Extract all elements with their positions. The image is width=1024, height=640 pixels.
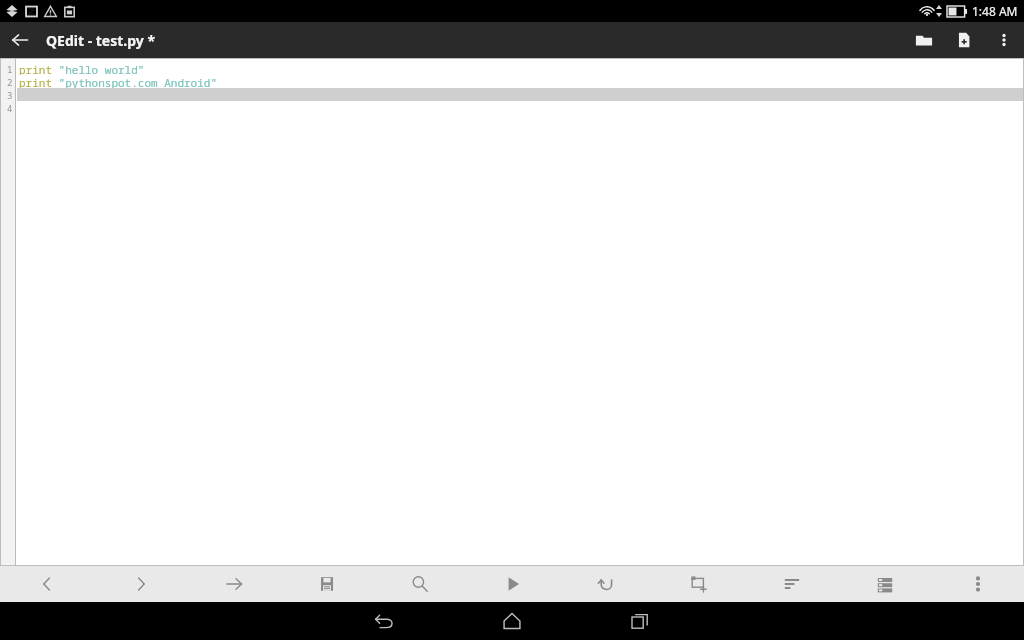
button[interactable]: More options xyxy=(931,566,1024,602)
button[interactable]: Open folder xyxy=(904,22,944,58)
staticText: 3 xyxy=(7,89,13,101)
staticText: 4 xyxy=(7,102,13,114)
button[interactable]: Tab xyxy=(187,566,280,602)
staticText: QEdit - test.py * xyxy=(46,31,156,50)
staticText: print "pythonspot.com Android" xyxy=(19,75,217,88)
button[interactable]: More options xyxy=(984,22,1024,58)
button[interactable]: List xyxy=(838,566,931,602)
button[interactable]: Save xyxy=(280,566,373,602)
button[interactable]: Recent apps xyxy=(610,602,670,640)
button[interactable]: Format xyxy=(745,566,838,602)
button[interactable]: Home xyxy=(482,602,542,640)
button[interactable]: Insert snippet xyxy=(652,566,745,602)
button[interactable]: Run xyxy=(466,566,559,602)
button[interactable]: New file xyxy=(944,22,984,58)
staticText: 1:48 AM xyxy=(972,3,1018,19)
button[interactable]: Next xyxy=(94,566,187,602)
button[interactable]: Back xyxy=(354,602,414,640)
button[interactable]: Back xyxy=(0,22,40,58)
button[interactable]: Undo xyxy=(559,566,652,602)
staticText: 1 xyxy=(7,63,13,75)
button[interactable]: Previous xyxy=(0,566,94,602)
staticText: print "hello world" xyxy=(19,62,145,75)
staticText: 2 xyxy=(7,76,13,88)
button[interactable]: Search xyxy=(373,566,466,602)
